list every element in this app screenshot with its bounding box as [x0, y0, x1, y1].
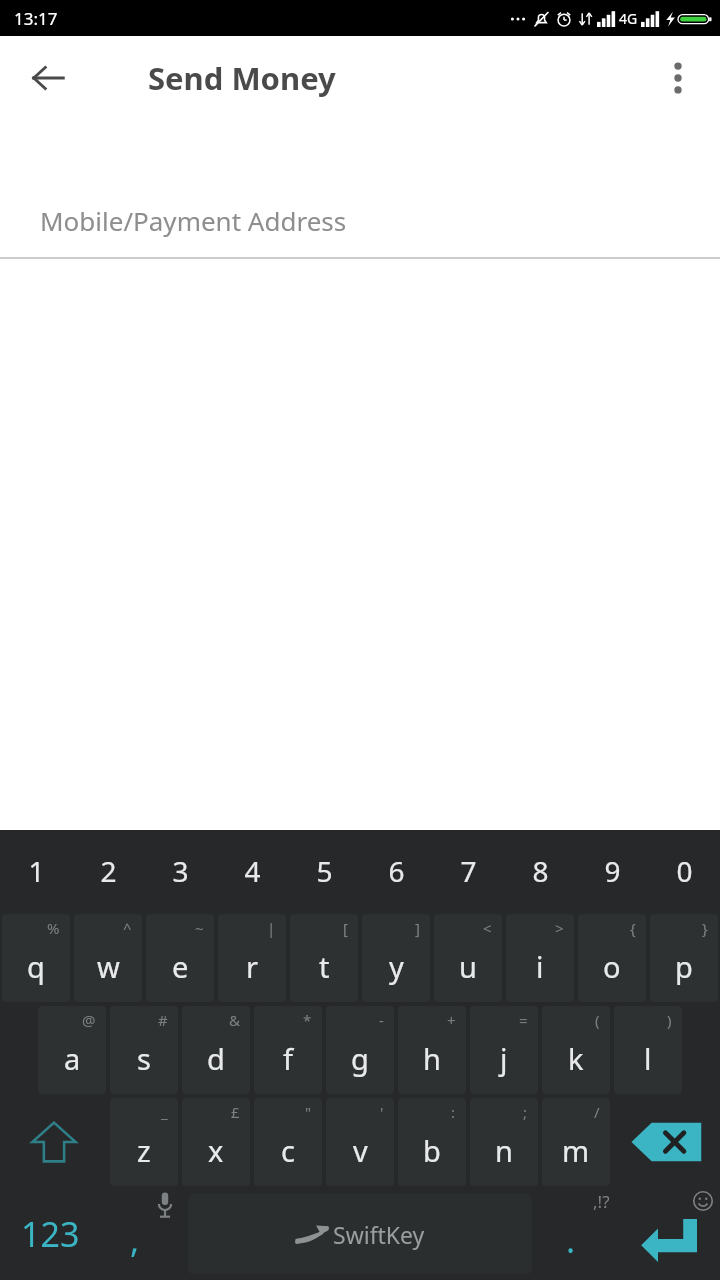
staticText: i — [536, 947, 544, 986]
button[interactable]: Backspace — [612, 1096, 720, 1188]
staticText: ^ — [123, 918, 132, 938]
staticText: " — [305, 1102, 312, 1122]
button[interactable]: # — [110, 1006, 178, 1094]
button[interactable]: ) — [614, 1006, 682, 1094]
button[interactable]: * — [254, 1006, 322, 1094]
staticText: * — [303, 1010, 312, 1030]
staticText: v — [353, 1131, 368, 1170]
staticText: u — [459, 947, 477, 986]
button[interactable]: ( — [542, 1006, 610, 1094]
button[interactable]: | — [218, 914, 286, 1002]
button[interactable]: ^ — [74, 914, 142, 1002]
staticText: p — [675, 947, 693, 986]
button[interactable]: 8 — [504, 830, 576, 912]
button[interactable]: Back — [20, 50, 76, 106]
button[interactable]: Shift — [0, 1096, 108, 1188]
staticText: % — [47, 918, 60, 938]
staticText: 0 — [676, 852, 693, 890]
staticText: k — [568, 1039, 584, 1078]
staticText: Mobile/Payment Address — [40, 203, 347, 238]
staticText: r — [246, 947, 258, 986]
button[interactable]: ] — [362, 914, 430, 1002]
staticText: _ — [161, 1102, 168, 1122]
button[interactable]: / — [542, 1098, 610, 1186]
staticText: f — [283, 1039, 293, 1078]
staticText: [ — [343, 918, 348, 938]
button[interactable]: 1 — [0, 830, 72, 912]
staticText: { — [630, 918, 636, 938]
staticText: g — [351, 1039, 369, 1078]
button[interactable]: @ — [38, 1006, 106, 1094]
button[interactable]: Enter — [620, 1188, 720, 1280]
button[interactable]: = — [470, 1006, 538, 1094]
staticText: . — [566, 1217, 576, 1263]
staticText: b — [423, 1131, 441, 1170]
staticText: 1 — [28, 852, 45, 890]
staticText: 4 — [244, 852, 261, 890]
staticText: > — [555, 918, 564, 938]
staticText: ] — [415, 918, 420, 938]
button[interactable]: " — [254, 1098, 322, 1186]
staticText: ,!? — [593, 1190, 610, 1213]
button[interactable]: 2 — [72, 830, 144, 912]
button[interactable]: 5 — [288, 830, 360, 912]
button[interactable]: Mobile/Payment Address — [0, 183, 720, 257]
button[interactable]: - — [326, 1006, 394, 1094]
staticText: # — [158, 1010, 168, 1030]
staticText: e — [172, 947, 189, 986]
staticText: 3 — [172, 852, 189, 890]
staticText: h — [423, 1039, 441, 1078]
button[interactable]: ; — [470, 1098, 538, 1186]
button[interactable]: 123 — [0, 1188, 100, 1280]
button[interactable]: _ — [110, 1098, 178, 1186]
staticText: @ — [82, 1010, 96, 1030]
staticText: Send Money — [148, 57, 336, 99]
staticText: 6 — [388, 852, 405, 890]
button[interactable]: } — [650, 914, 718, 1002]
staticText: 8 — [532, 852, 549, 890]
staticText: o — [603, 947, 621, 986]
button[interactable]: > — [506, 914, 574, 1002]
staticText: 2 — [100, 852, 117, 890]
staticText: c — [281, 1131, 295, 1170]
staticText: & — [229, 1010, 240, 1030]
button[interactable]: £ — [182, 1098, 250, 1186]
button[interactable]: 7 — [432, 830, 504, 912]
button[interactable]: More options — [650, 50, 706, 106]
staticText: ( — [595, 1010, 600, 1030]
button[interactable]: : — [398, 1098, 466, 1186]
button[interactable]: < — [434, 914, 502, 1002]
button[interactable]: ~ — [146, 914, 214, 1002]
staticText: w — [97, 947, 120, 986]
button[interactable]: Space — [188, 1194, 532, 1274]
button[interactable]: [ — [290, 914, 358, 1002]
staticText: t — [319, 947, 330, 986]
staticText: d — [207, 1039, 225, 1078]
button[interactable]: % — [2, 914, 70, 1002]
staticText: - — [379, 1010, 384, 1030]
button[interactable]: & — [182, 1006, 250, 1094]
button[interactable]: ' — [326, 1098, 394, 1186]
staticText: ) — [667, 1010, 672, 1030]
button[interactable]: Comma, voice input — [100, 1188, 186, 1280]
staticText: + — [447, 1010, 456, 1030]
staticText: 9 — [604, 852, 621, 890]
button[interactable]: 4 — [216, 830, 288, 912]
button[interactable]: { — [578, 914, 646, 1002]
button[interactable]: 3 — [144, 830, 216, 912]
button[interactable]: 9 — [576, 830, 648, 912]
staticText: z — [137, 1131, 151, 1170]
staticText: £ — [231, 1102, 240, 1122]
staticText: } — [702, 918, 708, 938]
staticText: : — [451, 1102, 456, 1122]
button[interactable]: Period, punctuation — [534, 1188, 620, 1280]
staticText: 7 — [460, 852, 477, 890]
button[interactable]: + — [398, 1006, 466, 1094]
staticText: < — [483, 918, 492, 938]
staticText: y — [389, 947, 404, 986]
staticText: / — [594, 1102, 600, 1122]
staticText: m — [562, 1131, 590, 1170]
button[interactable]: 6 — [360, 830, 432, 912]
button[interactable]: 0 — [648, 830, 720, 912]
staticText: j — [500, 1039, 508, 1078]
